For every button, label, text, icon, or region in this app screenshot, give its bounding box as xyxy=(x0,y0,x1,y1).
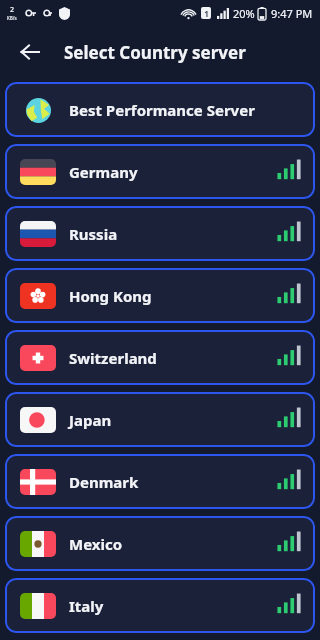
staticText: Mexico xyxy=(69,534,123,554)
staticText: 2 xyxy=(10,5,15,15)
button[interactable]: Switzerland xyxy=(5,330,315,385)
staticText: Switzerland xyxy=(69,348,157,368)
staticText: Germany xyxy=(69,162,138,182)
button[interactable]: Italy xyxy=(5,578,315,633)
staticText: Best Performance Server xyxy=(69,100,255,120)
button[interactable]: Hong Kong xyxy=(5,268,315,323)
staticText: Italy xyxy=(69,596,104,616)
staticText: KB/s xyxy=(7,15,17,21)
button[interactable]: Denmark xyxy=(5,454,315,509)
button[interactable]: Germany xyxy=(5,144,315,199)
staticText: Russia xyxy=(69,224,118,244)
staticText: 9:47 PM xyxy=(271,6,313,21)
staticText: 1 xyxy=(204,8,209,19)
button[interactable]: Best Performance Server xyxy=(5,82,315,137)
button[interactable]: Mexico xyxy=(5,516,315,571)
staticText: Select Country server xyxy=(64,41,246,64)
staticText: 20% xyxy=(233,6,255,21)
staticText: Denmark xyxy=(69,472,139,492)
button[interactable]: Japan xyxy=(5,392,315,447)
button[interactable]: Back xyxy=(8,30,52,74)
button[interactable]: Russia xyxy=(5,206,315,261)
staticText: Hong Kong xyxy=(69,286,152,306)
staticText: Japan xyxy=(69,410,112,430)
